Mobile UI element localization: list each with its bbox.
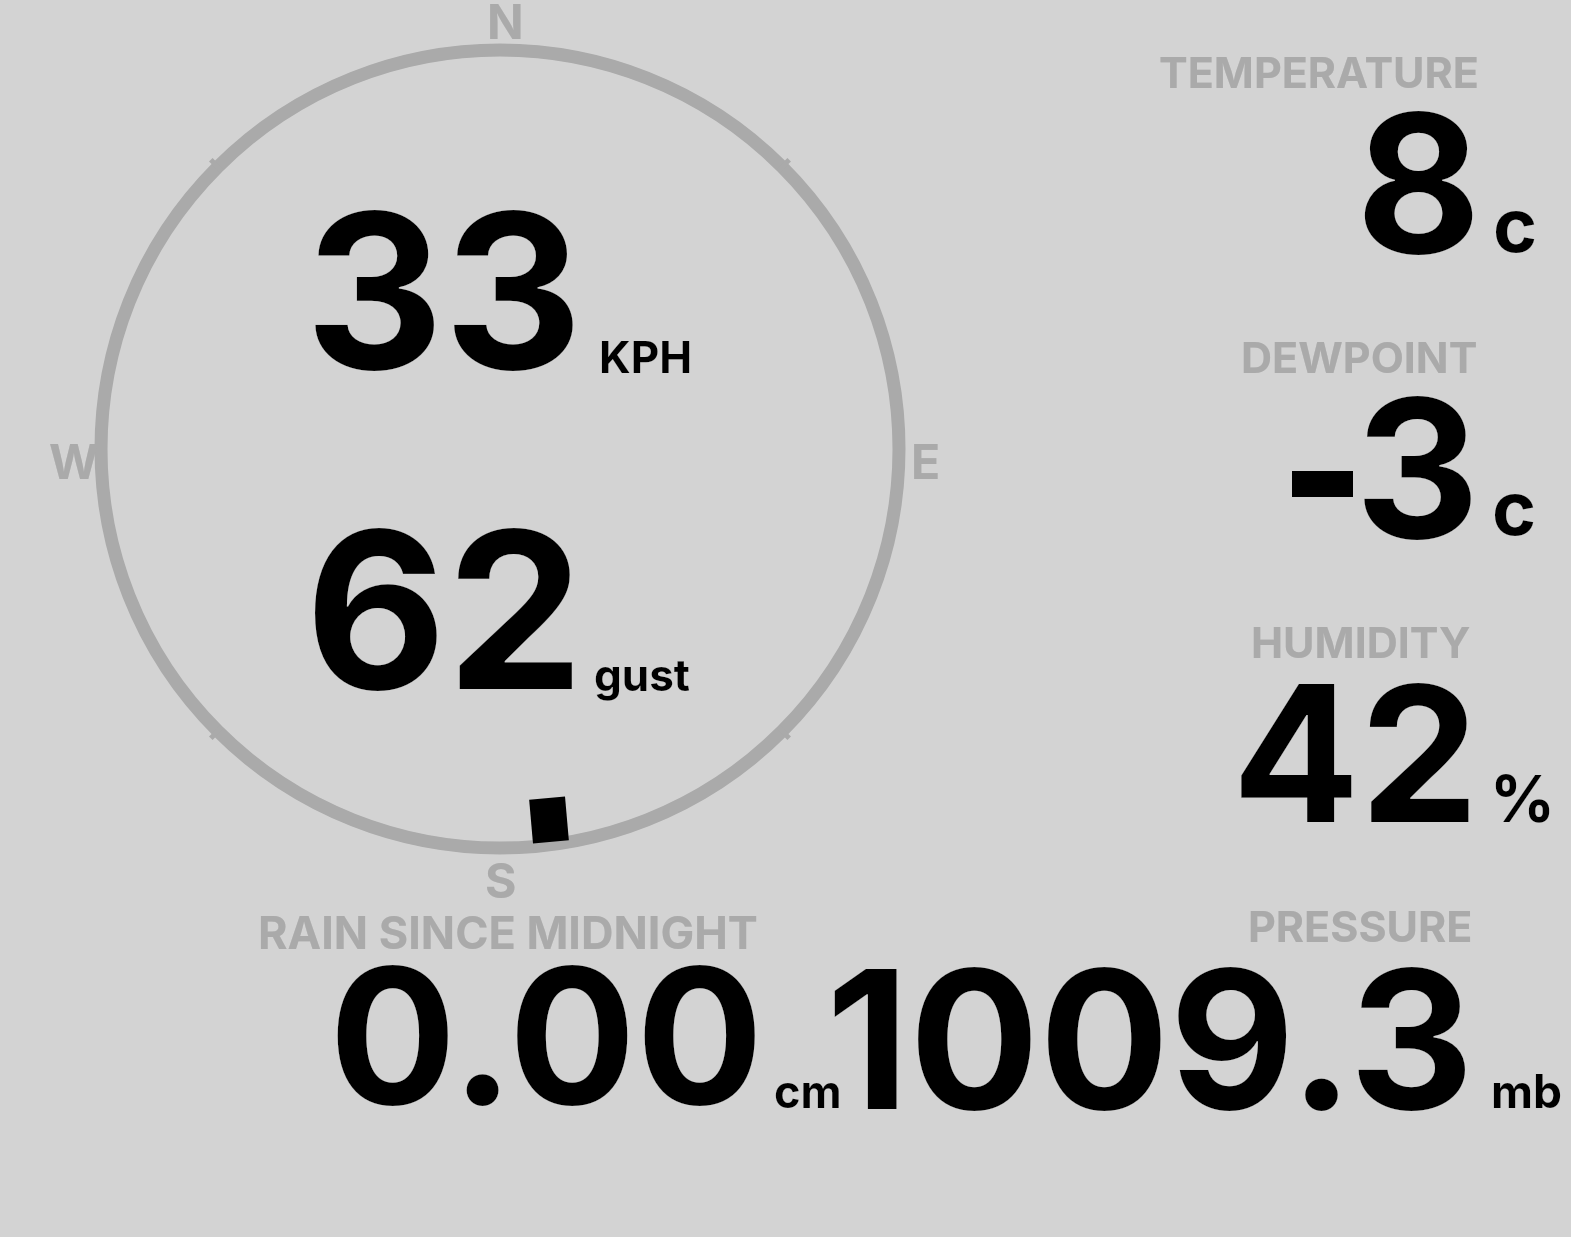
staticText: TEMPERATURE	[1159, 46, 1479, 98]
staticText: cm	[774, 1064, 842, 1118]
button[interactable]: Humidity 42 percent	[1100, 610, 1571, 850]
staticText: PRESSURE	[1248, 900, 1473, 952]
button[interactable]: Rain since midnight 0.00 cm	[230, 900, 850, 1130]
button[interactable]: Wind 33 KPH, gusting 62, from the south	[80, 30, 920, 870]
staticText: DEWPOINT	[1241, 331, 1478, 383]
staticText: 33	[305, 161, 583, 421]
button[interactable]: Temperature 8 degrees celsius	[1100, 40, 1571, 280]
staticText: 3	[1355, 351, 1480, 585]
staticText: S	[485, 851, 517, 909]
button[interactable]: Dewpoint minus 3 degrees celsius	[1100, 325, 1571, 565]
staticText: 8	[1356, 67, 1481, 299]
staticText: HUMIDITY	[1251, 616, 1471, 668]
staticText: KPH	[599, 330, 693, 383]
staticText: mb	[1491, 1063, 1562, 1119]
staticText: c	[1492, 462, 1537, 553]
staticText: 1009.3	[826, 922, 1474, 1156]
staticText: 62	[305, 478, 584, 742]
staticText: N	[487, 0, 524, 50]
staticText: gust	[594, 648, 690, 701]
staticText: c	[1493, 179, 1538, 270]
staticText: 42	[1232, 639, 1479, 868]
staticText: W	[49, 432, 99, 490]
button[interactable]: Pressure 1009.3 mb	[850, 900, 1571, 1130]
staticText: 0.00	[329, 921, 764, 1150]
staticText: RAIN SINCE MIDNIGHT	[258, 905, 758, 959]
staticText: %	[1490, 760, 1555, 837]
staticText: E	[911, 432, 941, 490]
